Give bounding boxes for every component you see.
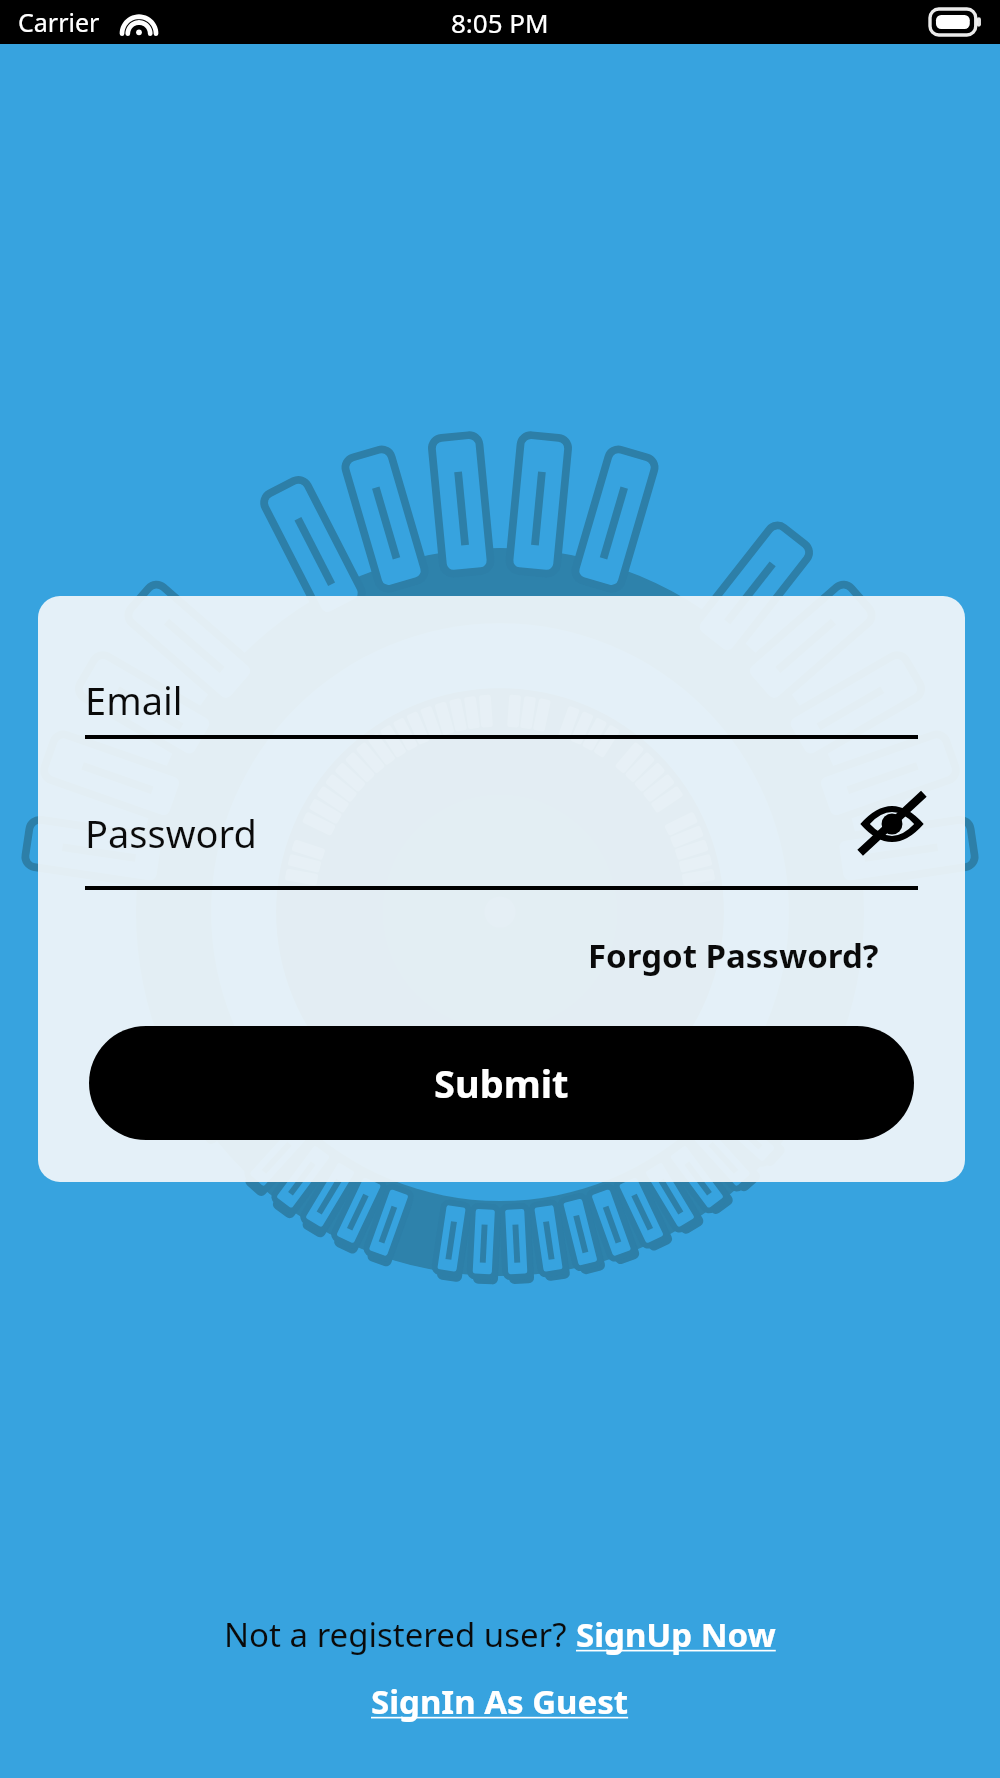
staticText: Not a registered user? bbox=[224, 1612, 576, 1657]
staticText: SignUp Now bbox=[576, 1612, 776, 1657]
button[interactable]: SignIn As Guest bbox=[371, 1679, 629, 1724]
staticText: Password bbox=[85, 807, 257, 859]
staticText: Forgot Password? bbox=[588, 933, 879, 978]
staticText: SignIn As Guest bbox=[371, 1679, 629, 1724]
staticText: Submit bbox=[434, 1057, 569, 1109]
button[interactable]: SignUp Now bbox=[576, 1612, 776, 1657]
button[interactable]: Submit bbox=[89, 1026, 914, 1140]
staticText: Email bbox=[85, 674, 183, 726]
button[interactable]: Toggle password visibility bbox=[856, 788, 928, 860]
staticText: 8:05 PM bbox=[451, 5, 549, 40]
button[interactable]: Forgot Password? bbox=[578, 927, 889, 984]
staticText: Carrier bbox=[18, 5, 100, 39]
